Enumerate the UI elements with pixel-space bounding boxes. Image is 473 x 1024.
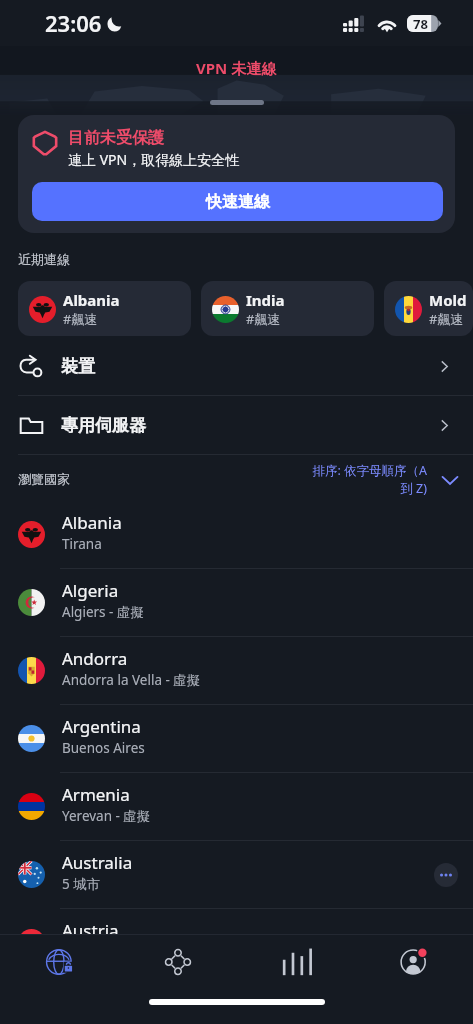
button[interactable]: India xyxy=(201,281,374,336)
button[interactable]: 快速連線 xyxy=(32,182,443,221)
staticText: #飆速 xyxy=(429,310,464,328)
button[interactable]: Albania xyxy=(18,281,191,336)
button[interactable]: 裝置 xyxy=(0,337,473,395)
staticText: Albania xyxy=(63,290,120,310)
staticText: 快速連線 xyxy=(206,192,270,212)
button[interactable]: Australia xyxy=(0,841,473,908)
button[interactable]: Meshnet xyxy=(119,935,237,988)
staticText: 裝置 xyxy=(61,356,95,377)
staticText: 專用伺服器 xyxy=(61,415,146,436)
button[interactable]: 目前未受保護 xyxy=(18,115,455,233)
staticText: Yerevan - 虛擬 xyxy=(62,807,151,825)
staticText: 排序: 依字母順序（A 到 Z) xyxy=(312,462,427,497)
button[interactable]: VPN xyxy=(0,935,119,988)
staticText: 5 城市 xyxy=(62,875,101,893)
staticText: #飆速 xyxy=(63,310,98,328)
staticText: 近期連線 xyxy=(18,251,70,267)
staticText: Algeria xyxy=(62,579,119,602)
staticText: Algiers - 虛擬 xyxy=(62,603,144,621)
staticText: Andorra xyxy=(62,647,128,670)
staticText: 目前未受保護 xyxy=(68,128,164,148)
button[interactable]: 專用伺服器 xyxy=(0,396,473,454)
button[interactable]: Armenia xyxy=(0,773,473,840)
staticText: Australia xyxy=(62,851,133,874)
staticText: VPN 未連線 xyxy=(196,58,277,78)
staticText: Vienna xyxy=(62,943,106,961)
staticText: 連上 VPN，取得線上安全性 xyxy=(68,150,240,169)
staticText: Armenia xyxy=(62,783,130,806)
staticText: India xyxy=(246,290,285,310)
button[interactable]: More options xyxy=(434,863,458,887)
button[interactable]: Algeria xyxy=(0,569,473,636)
staticText: 78 xyxy=(413,15,428,32)
staticText: Austria xyxy=(62,919,119,942)
staticText: Albania xyxy=(62,511,122,534)
staticText: Moldova xyxy=(429,290,473,310)
staticText: Argentina xyxy=(62,715,141,738)
staticText: Tirana xyxy=(62,535,102,553)
button[interactable]: Albania xyxy=(0,501,473,568)
staticText: Andorra la Vella - 虛擬 xyxy=(62,671,201,689)
staticText: #飆速 xyxy=(246,310,281,328)
button[interactable]: Moldova xyxy=(384,281,473,336)
button[interactable]: Andorra xyxy=(0,637,473,704)
button[interactable]: Profile xyxy=(355,935,473,988)
staticText: Buenos Aires xyxy=(62,739,145,757)
button[interactable]: 排序: 依字母順序（A 到 Z) xyxy=(312,462,461,497)
staticText: 23:06 xyxy=(45,8,102,38)
button[interactable]: Austria xyxy=(0,909,473,976)
staticText: 瀏覽國家 xyxy=(18,471,70,487)
button[interactable]: Statistics xyxy=(237,935,355,988)
button[interactable]: Argentina xyxy=(0,705,473,772)
